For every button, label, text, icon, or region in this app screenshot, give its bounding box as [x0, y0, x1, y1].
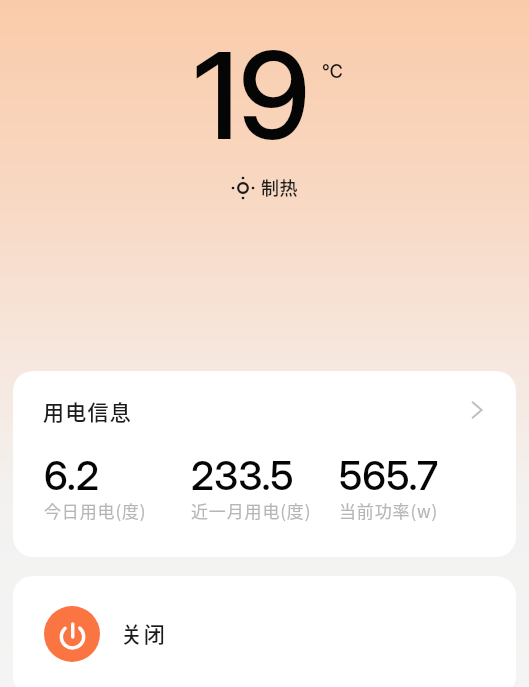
staticText: 制热 — [261, 174, 299, 200]
staticText: 用电信息 — [43, 396, 133, 426]
other: Power off — [58, 621, 86, 649]
staticText: 19 — [194, 23, 311, 168]
staticText: °C — [322, 61, 343, 83]
button[interactable]: 用电信息 — [13, 371, 516, 557]
staticText: 565.7 — [339, 451, 438, 499]
button[interactable]: Power off — [44, 576, 516, 687]
staticText: 233.5 — [191, 451, 294, 499]
staticText: 6.2 — [44, 451, 100, 499]
other: More details — [469, 401, 487, 419]
staticText: 今日用电(度) — [44, 498, 147, 523]
staticText: 近一月用电(度) — [191, 498, 312, 523]
staticText: 当前功率(w) — [339, 498, 439, 523]
staticText: 关闭 — [121, 618, 167, 648]
